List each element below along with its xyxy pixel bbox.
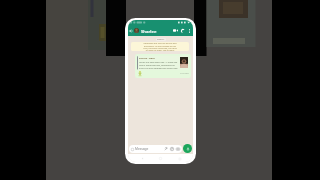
button[interactable]: TODAY (156, 38, 166, 41)
staticText: Sharlee - Video (139, 57, 155, 60)
staticText: TODAY (157, 38, 165, 41)
button[interactable]: Record voice message (183, 144, 192, 153)
button[interactable]: Payments (170, 147, 174, 151)
staticText: 7:16 pm (180, 72, 189, 75)
button[interactable]: Messages and calls are end-to-end encryp… (143, 42, 177, 51)
button[interactable]: Video call (171, 25, 179, 36)
staticText: Messages and calls are end-to-end encryp… (143, 42, 177, 51)
button[interactable]: Camera (176, 147, 180, 151)
button[interactable]: Sharlee - Video (137, 56, 189, 76)
staticText: Here's the new video edit – I made the c… (139, 61, 179, 70)
button[interactable]: Back (128, 25, 134, 36)
staticText: Sharlee (141, 28, 157, 34)
staticText: Message (135, 147, 149, 151)
button[interactable]: Message (131, 145, 180, 153)
button[interactable]: More options (186, 25, 192, 36)
button[interactable]: Attach (164, 147, 168, 151)
button[interactable]: Voice call (179, 25, 186, 36)
